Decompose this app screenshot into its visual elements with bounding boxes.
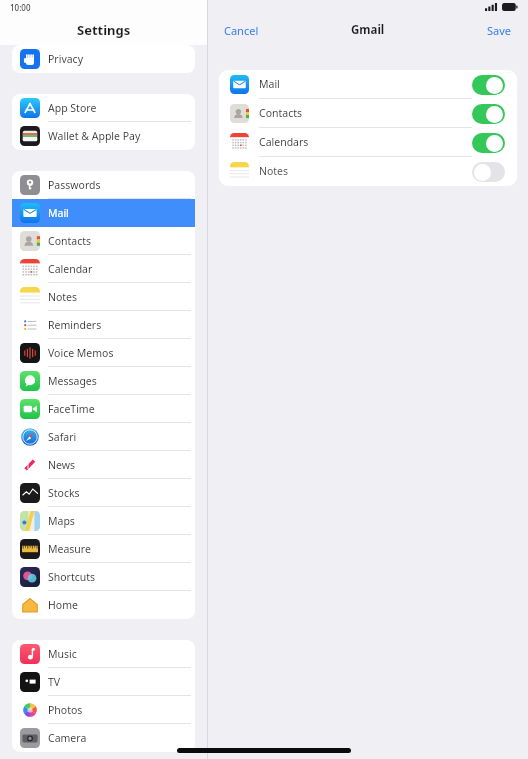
staticText: Voice Memos <box>48 346 114 360</box>
staticText: Mail <box>48 206 69 220</box>
button[interactable]: Stocks <box>12 479 195 507</box>
button[interactable]: Shortcuts <box>12 563 195 591</box>
button[interactable]: Reminders <box>12 311 195 339</box>
button[interactable]: Notes <box>219 157 517 186</box>
staticText: FaceTime <box>48 402 95 416</box>
staticText: TV <box>48 675 61 689</box>
button[interactable]: Calendar <box>12 255 195 283</box>
button[interactable]: Notes <box>12 283 195 311</box>
staticText: Shortcuts <box>48 570 96 584</box>
button[interactable]: Cancel <box>220 20 263 41</box>
staticText: Safari <box>48 430 77 444</box>
staticText: Gmail <box>351 22 385 38</box>
staticText: Contacts <box>48 234 92 248</box>
staticText: Measure <box>48 542 91 556</box>
staticText: Contacts <box>259 106 303 120</box>
staticText: Notes <box>48 290 78 304</box>
button[interactable]: Wallet & Apple Pay <box>12 122 195 150</box>
staticText: Photos <box>48 703 83 717</box>
button[interactable]: Passwords <box>12 171 195 199</box>
button[interactable]: On <box>472 75 505 95</box>
staticText: Privacy <box>48 52 84 66</box>
button[interactable]: Safari <box>12 423 195 451</box>
staticText: Save <box>487 23 512 38</box>
button[interactable]: Contacts <box>219 99 517 128</box>
button[interactable]: Calendars <box>219 128 517 157</box>
staticText: Calendar <box>48 262 93 276</box>
staticText: Reminders <box>48 318 102 332</box>
staticText: Calendars <box>259 135 309 149</box>
staticText: App Store <box>48 101 97 115</box>
button[interactable]: On <box>472 133 505 153</box>
button[interactable]: Maps <box>12 507 195 535</box>
button[interactable]: Contacts <box>12 227 195 255</box>
button[interactable]: Home <box>12 591 195 619</box>
button[interactable]: News <box>12 451 195 479</box>
staticText: Stocks <box>48 486 80 500</box>
staticText: Messages <box>48 374 97 388</box>
button[interactable]: Save <box>483 20 516 41</box>
staticText: Settings <box>77 21 131 39</box>
staticText: Notes <box>259 164 289 178</box>
button[interactable]: Mail <box>219 70 517 99</box>
button[interactable]: Mail <box>12 199 195 227</box>
staticText: 10:00 <box>10 2 31 13</box>
staticText: Wallet & Apple Pay <box>48 129 141 143</box>
button[interactable]: Voice Memos <box>12 339 195 367</box>
staticText: Cancel <box>224 23 259 38</box>
button[interactable]: Measure <box>12 535 195 563</box>
button[interactable]: Off <box>472 162 505 182</box>
button[interactable]: On <box>472 104 505 124</box>
staticText: Passwords <box>48 178 101 192</box>
button[interactable]: Privacy <box>12 45 195 73</box>
button[interactable]: Photos <box>12 696 195 724</box>
button[interactable]: FaceTime <box>12 395 195 423</box>
button[interactable]: Messages <box>12 367 195 395</box>
button[interactable]: Music <box>12 640 195 668</box>
staticText: Home <box>48 598 78 612</box>
button[interactable]: TV <box>12 668 195 696</box>
staticText: Maps <box>48 514 75 528</box>
button[interactable]: Camera <box>12 724 195 752</box>
staticText: Mail <box>259 77 280 91</box>
staticText: News <box>48 458 75 472</box>
staticText: Music <box>48 647 77 661</box>
button[interactable]: App Store <box>12 94 195 122</box>
staticText: Camera <box>48 731 87 745</box>
